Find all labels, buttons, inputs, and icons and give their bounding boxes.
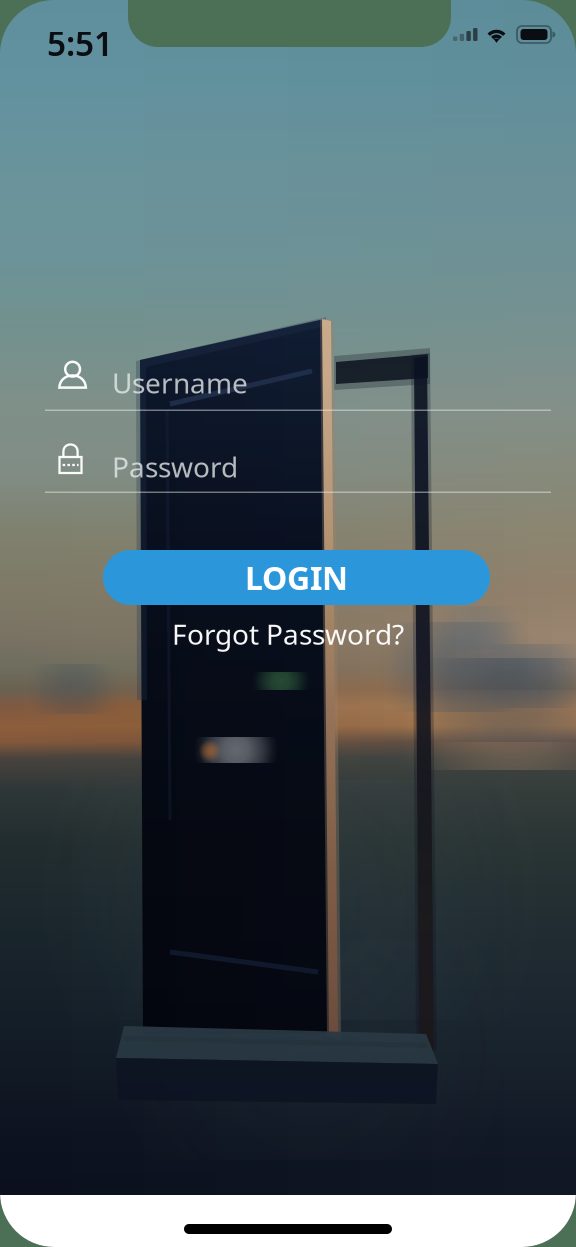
- staticText: LOGIN: [245, 556, 348, 599]
- button[interactable]: Username: [45, 345, 551, 411]
- staticText: Forgot Password?: [172, 615, 404, 653]
- staticText: Password: [112, 448, 238, 485]
- staticText: 5:51: [47, 21, 113, 65]
- button[interactable]: Forgot Password?: [158, 617, 418, 651]
- button[interactable]: Password: [45, 425, 551, 493]
- button[interactable]: LOGIN: [103, 550, 490, 605]
- staticText: Username: [112, 364, 248, 401]
